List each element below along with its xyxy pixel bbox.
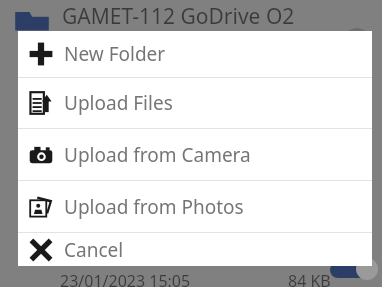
staticText: Upload from Photos (64, 194, 244, 220)
button[interactable]: Upload from Camera (18, 129, 372, 180)
staticText: Cancel (64, 237, 124, 263)
button[interactable]: Cancel (18, 233, 372, 266)
staticText: 23/01/2023 15:05 (60, 270, 191, 287)
button[interactable]: Upload Files (18, 78, 372, 128)
staticText: GAMET-112 GoDrive O2 (62, 2, 295, 31)
staticText: Upload Files (64, 90, 173, 116)
button[interactable]: New Folder (18, 31, 372, 77)
staticText: 84 KB (288, 270, 331, 287)
staticText: Upload from Camera (64, 142, 251, 168)
staticText: New Folder (64, 41, 166, 67)
button[interactable]: Upload from Photos (18, 181, 372, 232)
